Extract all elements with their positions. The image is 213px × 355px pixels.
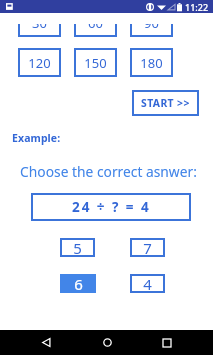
button[interactable]: 150 xyxy=(74,48,117,77)
button[interactable]: 5 xyxy=(60,238,95,257)
button[interactable]: Recents xyxy=(152,330,182,355)
button[interactable]: 6 xyxy=(60,274,96,293)
staticText: 6 xyxy=(74,274,83,293)
button[interactable]: 90 xyxy=(130,24,173,37)
button[interactable]: 7 xyxy=(130,238,165,257)
staticText: Choose the correct asnwer: xyxy=(2,162,213,181)
button[interactable]: 30 xyxy=(18,24,61,37)
button[interactable]: 4 xyxy=(130,274,165,293)
staticText: 24 ÷ ? = 4 xyxy=(72,198,151,216)
staticText: Example: xyxy=(12,131,61,145)
staticText: 7 xyxy=(143,238,152,257)
button[interactable]: Home xyxy=(92,330,122,355)
button[interactable]: 120 xyxy=(18,48,61,77)
button[interactable]: 24 ÷ ? = 4 xyxy=(31,193,191,221)
staticText: 180 xyxy=(140,54,163,72)
staticText: 5 xyxy=(73,238,82,257)
staticText: 150 xyxy=(84,54,107,72)
staticText: 120 xyxy=(28,54,51,72)
staticText: 90 xyxy=(144,24,159,32)
staticText: START >> xyxy=(141,96,190,110)
staticText: 30 xyxy=(32,24,47,32)
button[interactable]: 60 xyxy=(74,24,117,37)
staticText: 60 xyxy=(88,24,103,32)
button[interactable]: START >> xyxy=(132,90,199,116)
staticText: 11:22 xyxy=(185,1,209,13)
staticText: 4 xyxy=(143,274,152,293)
button[interactable]: Back xyxy=(31,330,61,355)
button[interactable]: 180 xyxy=(130,48,173,77)
